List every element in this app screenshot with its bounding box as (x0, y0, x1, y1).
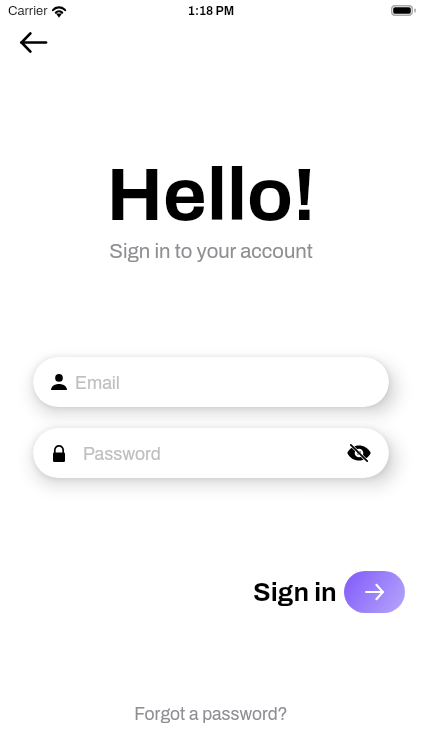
button[interactable]: Back (12, 21, 54, 63)
button[interactable]: Sign in (253, 571, 405, 613)
staticText: Sign in to your account (0, 240, 422, 262)
button[interactable]: Show password (342, 436, 376, 470)
staticText: Hello! (0, 154, 422, 236)
button[interactable]: Forgot a password? (0, 705, 422, 724)
staticText: Carrier (8, 4, 48, 18)
staticText: Password (83, 444, 161, 463)
button[interactable]: Email (33, 357, 389, 407)
staticText: 1:18 PM (0, 4, 422, 17)
staticText: Sign in (253, 578, 337, 606)
button[interactable]: Password (33, 428, 389, 478)
staticText: Email (75, 373, 120, 392)
